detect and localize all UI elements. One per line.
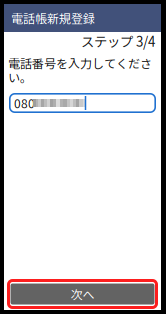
staticText: 電話帳新規登録 xyxy=(11,9,95,27)
staticText: 080 xyxy=(14,94,35,112)
staticText: 次へ xyxy=(70,285,94,303)
staticText: い。 xyxy=(8,68,32,86)
button[interactable]: 次へ xyxy=(7,279,158,309)
staticText: ステップ 3/4 xyxy=(81,31,155,51)
staticText: 電話番号を入力してくださ xyxy=(8,54,152,72)
